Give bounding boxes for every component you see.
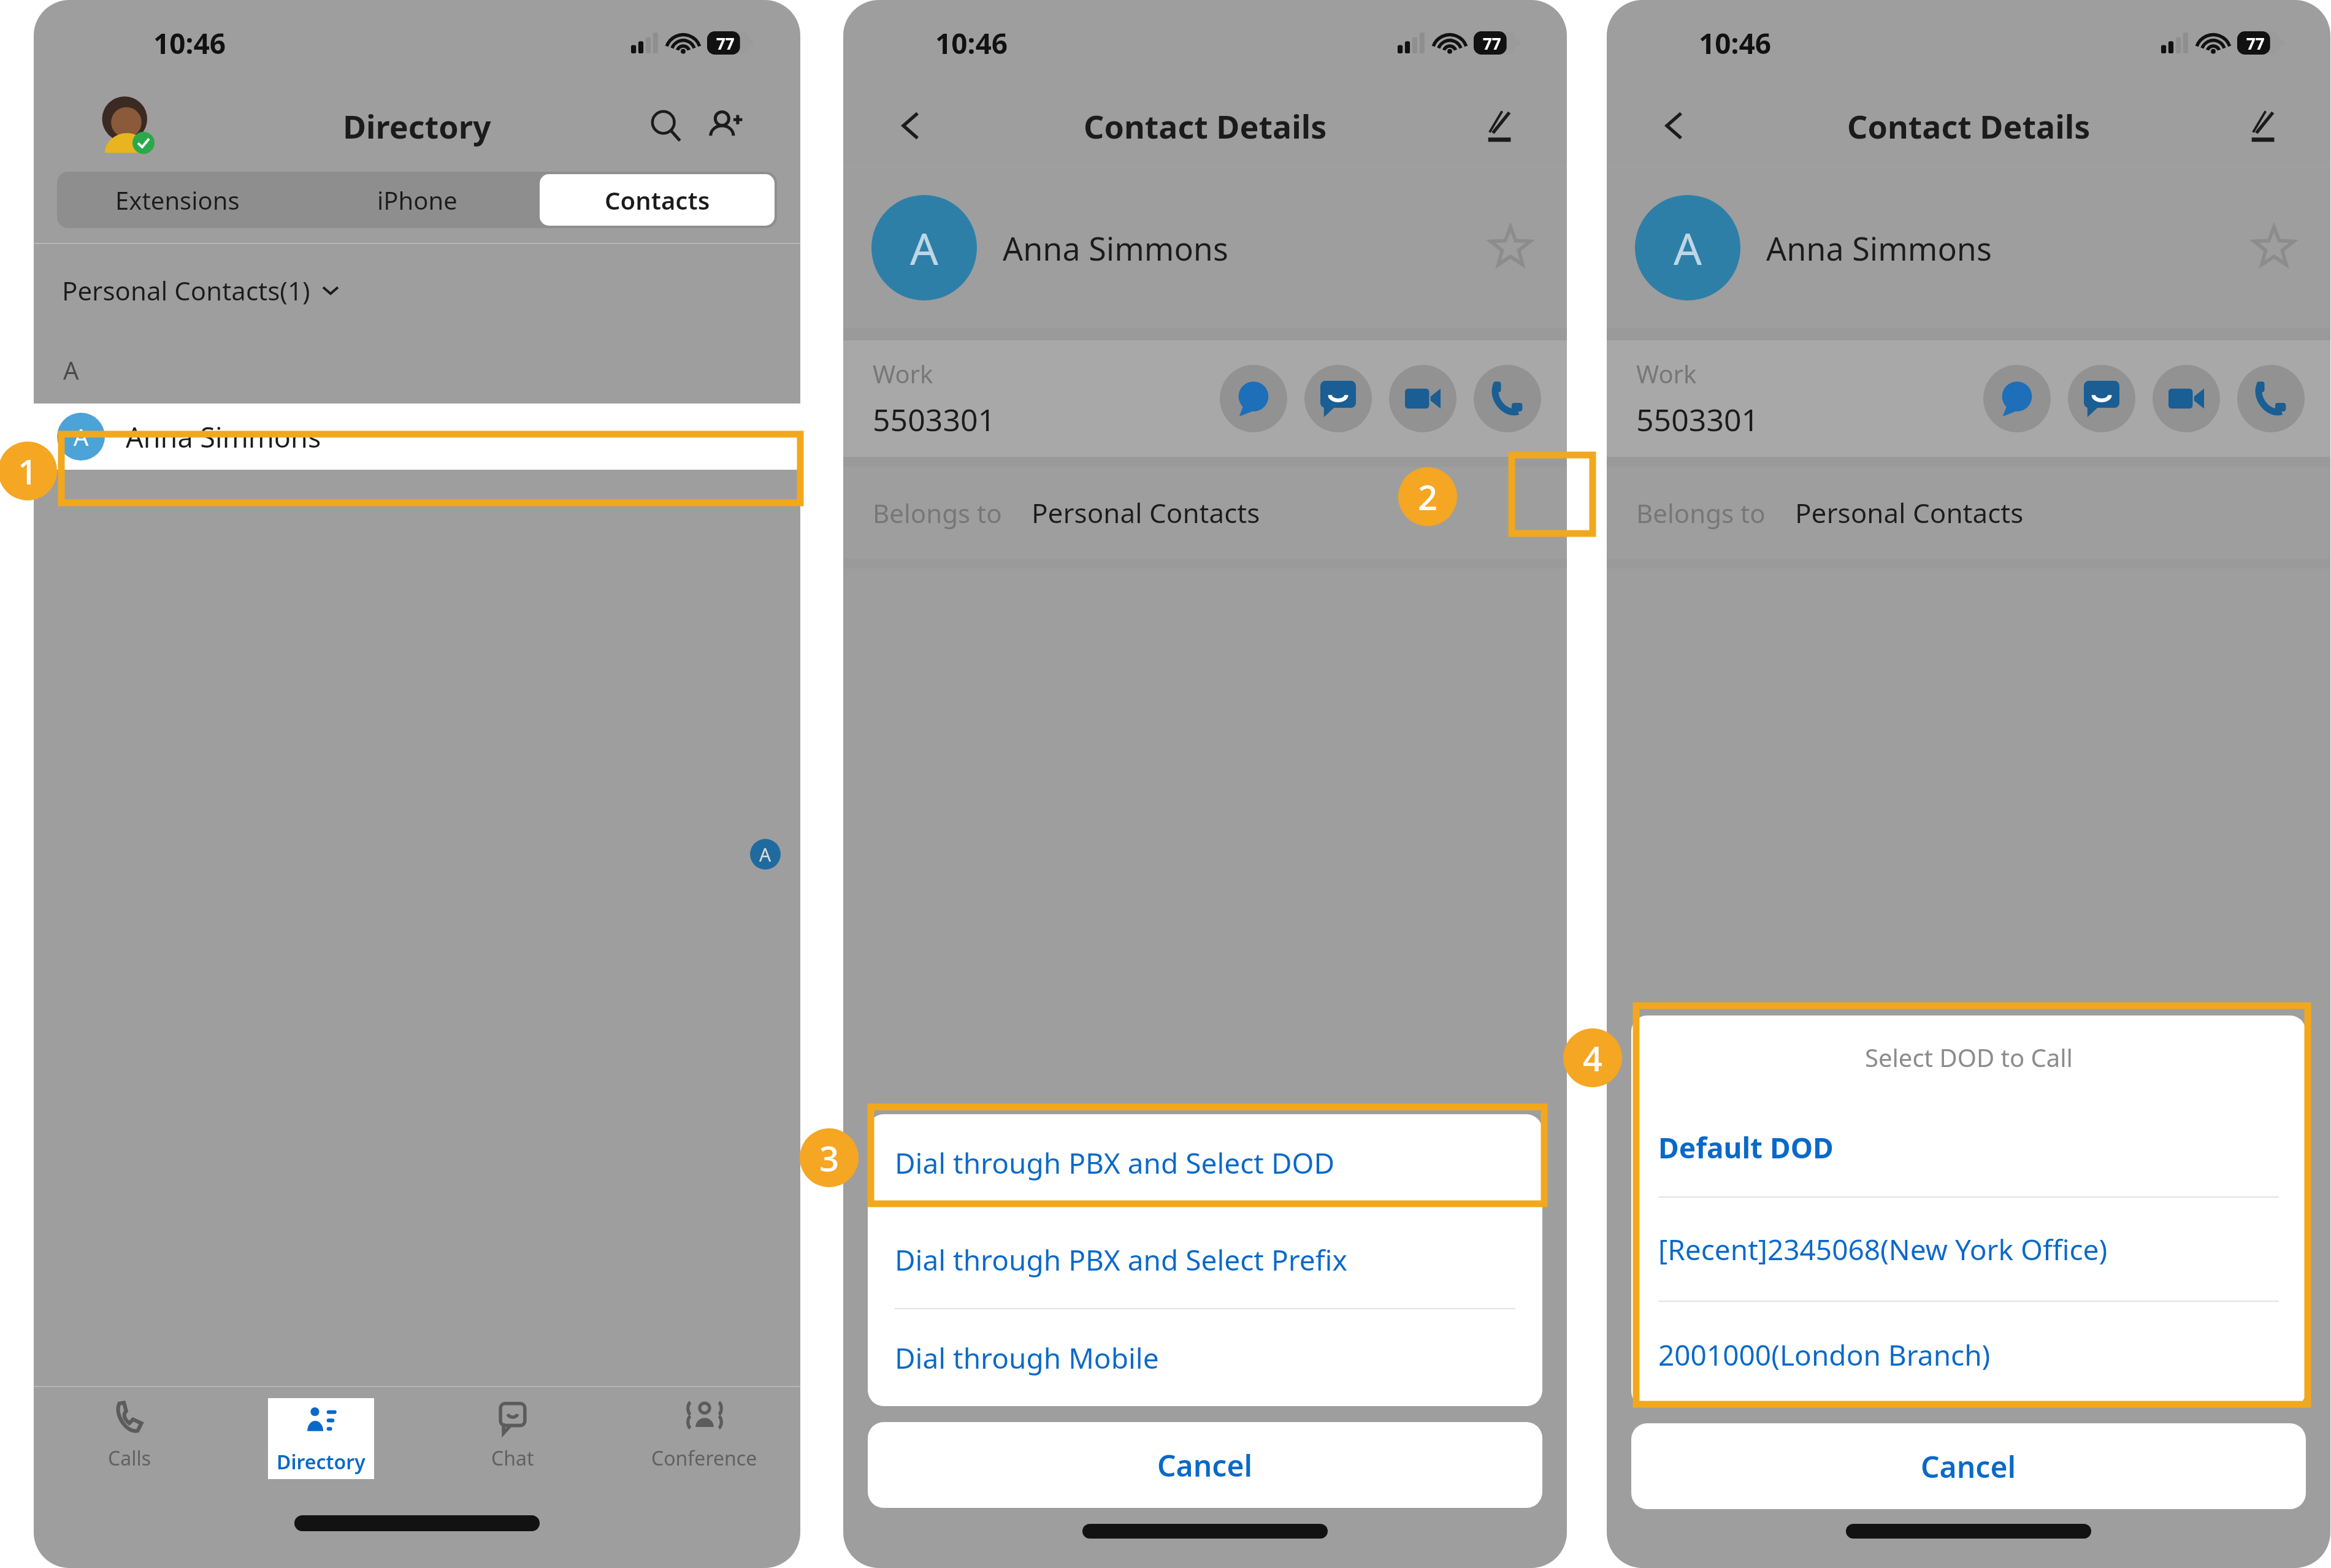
staticText: Contact Details (1084, 104, 1327, 148)
button[interactable]: Call (2237, 365, 2305, 432)
staticText: Cancel (1157, 1445, 1253, 1485)
button[interactable]: Add contact (702, 102, 748, 149)
staticText: iPhone (377, 183, 457, 216)
staticText: A (63, 353, 79, 386)
staticText: 10:46 (153, 24, 226, 63)
staticText: Default DOD (1658, 1128, 1834, 1167)
button[interactable]: Back (1651, 102, 1699, 150)
button[interactable]: iPhone (300, 174, 535, 226)
staticText: A (759, 842, 771, 867)
button[interactable]: Conference (608, 1387, 800, 1497)
button[interactable]: Directory (225, 1387, 416, 1497)
staticText: Belongs to (873, 495, 1002, 530)
staticText: Directory (343, 104, 491, 148)
staticText: 77 (716, 33, 735, 54)
button[interactable]: Call (1474, 365, 1541, 432)
button[interactable]: Cancel (868, 1422, 1542, 1508)
staticText: Belongs to (1636, 495, 1766, 530)
staticText: Work (873, 357, 933, 390)
staticText: A (1674, 218, 1702, 278)
button[interactable]: Edit (2238, 102, 2286, 150)
staticText: Dial through PBX and Select Prefix (895, 1241, 1347, 1279)
button[interactable]: A (34, 403, 800, 470)
button[interactable]: Send SMS (1220, 365, 1287, 432)
staticText: Work (1636, 357, 1697, 390)
staticText: 10:46 (935, 24, 1008, 63)
button[interactable]: A (843, 167, 1567, 328)
staticText: Cancel (1921, 1447, 2016, 1486)
staticText: Contacts (605, 183, 710, 216)
staticText: Dial through Mobile (895, 1339, 1159, 1377)
button[interactable]: Video call (2153, 365, 2220, 432)
staticText: 5503301 (873, 399, 996, 440)
staticText: Personal Contacts (1032, 494, 1260, 531)
button[interactable]: Favorite (1486, 223, 1535, 272)
staticText: 3 (819, 1134, 840, 1181)
button[interactable]: Video call (1389, 365, 1456, 432)
button[interactable]: Profile (98, 98, 155, 154)
staticText: 4 (1583, 1034, 1603, 1081)
staticText: Select DOD to Call (1865, 1041, 2073, 1074)
button[interactable]: 2001000(London Branch) (1631, 1302, 2306, 1407)
button[interactable]: A (1607, 167, 2330, 328)
staticText: 5503301 (1636, 399, 1759, 440)
button[interactable]: Personal Contacts(1) (34, 244, 800, 336)
staticText: Personal Contacts (1795, 494, 2024, 531)
button[interactable]: Extensions (59, 174, 295, 226)
staticText: Contact Details (1847, 104, 2091, 148)
button[interactable]: Contacts (540, 174, 775, 226)
staticText: Chat (491, 1445, 534, 1472)
staticText: 2001000(London Branch) (1658, 1336, 1991, 1374)
button[interactable]: Back (887, 102, 935, 150)
staticText: Dial through PBX and Select DOD (895, 1144, 1335, 1182)
button[interactable]: Favorite (2249, 223, 2298, 272)
staticText: A (74, 421, 89, 453)
staticText: 2 (1418, 473, 1438, 520)
staticText: Extensions (115, 183, 240, 216)
staticText: 1 (18, 448, 38, 494)
button[interactable]: Chat (416, 1387, 608, 1497)
staticText: [Recent]2345068(New York Office) (1658, 1230, 2108, 1269)
staticText: Anna Simmons (1003, 226, 1228, 270)
staticText: Anna Simmons (1766, 226, 1992, 270)
button[interactable]: Send message (2068, 365, 2135, 432)
staticText: Conference (651, 1445, 757, 1472)
button[interactable]: [Recent]2345068(New York Office) (1631, 1198, 2306, 1301)
button[interactable]: Send message (1304, 365, 1372, 432)
staticText: A (910, 218, 939, 278)
button[interactable]: Dial through PBX and Select DOD (868, 1114, 1542, 1211)
staticText: 10:46 (1699, 24, 1772, 63)
button[interactable]: Calls (34, 1387, 225, 1497)
button[interactable]: Send SMS (1983, 365, 2051, 432)
staticText: Anna Simmons (126, 418, 321, 456)
staticText: 77 (1483, 33, 1501, 54)
button[interactable]: Default DOD (1631, 1098, 2306, 1196)
button[interactable]: Search (644, 104, 688, 148)
staticText: Calls (108, 1445, 151, 1472)
button[interactable]: Cancel (1631, 1423, 2306, 1509)
staticText: Directory (277, 1448, 366, 1475)
button[interactable]: Edit (1475, 102, 1523, 150)
button[interactable]: Dial through Mobile (868, 1309, 1542, 1406)
staticText: Personal Contacts(1) (62, 273, 310, 308)
staticText: 77 (2246, 33, 2265, 54)
